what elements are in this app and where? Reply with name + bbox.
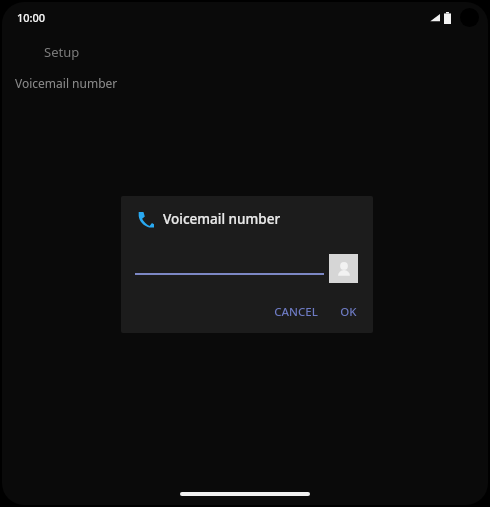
staticText: 10:00 — [17, 10, 46, 25]
staticText: Voicemail number — [163, 210, 281, 228]
button[interactable]: Choose contact — [329, 254, 358, 283]
button[interactable]: CANCEL — [266, 299, 326, 325]
button[interactable]: OK — [332, 299, 365, 325]
staticText: OK — [340, 304, 357, 320]
staticText: Voicemail number — [15, 75, 118, 91]
staticText: Setup — [44, 43, 80, 61]
staticText: CANCEL — [274, 304, 318, 320]
